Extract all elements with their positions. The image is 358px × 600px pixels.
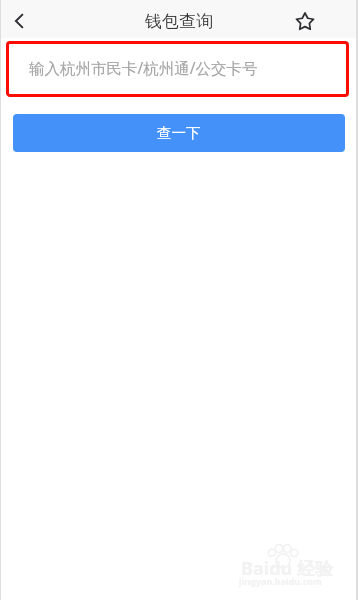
button[interactable]: 查一下 <box>13 114 345 152</box>
button[interactable]: Back <box>0 0 40 38</box>
staticText: 钱包查询 <box>145 11 213 32</box>
staticText: 输入杭州市民卡/杭州通/公交卡号 <box>29 57 258 78</box>
staticText: jingyan.baidu.com <box>239 575 322 587</box>
staticText: Baidu 经验 <box>241 556 333 581</box>
button[interactable]: 输入杭州市民卡/杭州通/公交卡号 <box>6 41 349 97</box>
button[interactable]: Favorite <box>314 0 358 38</box>
staticText: 查一下 <box>157 124 201 142</box>
